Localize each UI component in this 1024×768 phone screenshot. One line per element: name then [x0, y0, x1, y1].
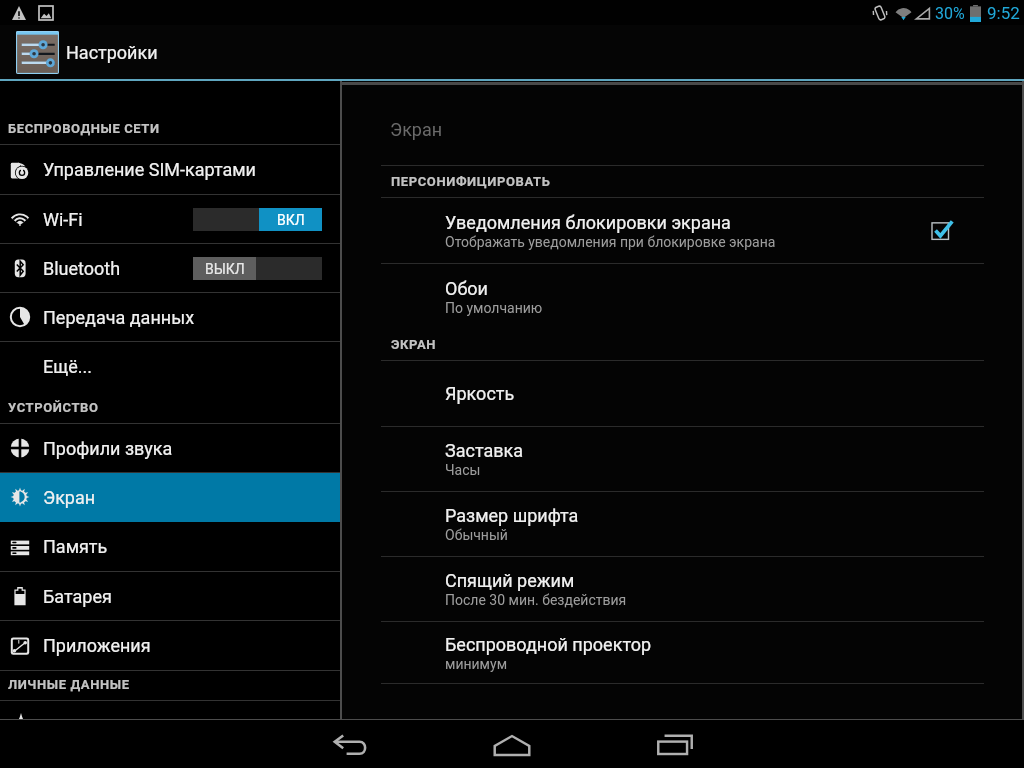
staticText: Профили звука — [43, 438, 173, 459]
staticText: Управление SIM-картами — [43, 159, 256, 180]
button[interactable]: Wi-Fi — [0, 195, 340, 243]
staticText: Экран — [390, 119, 443, 140]
staticText: Ещё... — [43, 356, 93, 377]
button[interactable]: Уведомления блокировки экрана — [342, 198, 1024, 263]
button[interactable]: Back — [318, 721, 382, 768]
staticText: Размер шрифта — [445, 505, 579, 526]
button[interactable]: Управление SIM-картами — [0, 145, 340, 194]
staticText: Wi-Fi — [43, 209, 83, 230]
staticText: БЕСПРОВОДНЫЕ СЕТИ — [8, 121, 160, 136]
button[interactable]: Заставка — [342, 427, 1024, 491]
staticText: ВКЛ — [277, 212, 305, 228]
button[interactable]: Размер шрифта — [342, 492, 1024, 556]
staticText: Настройки — [66, 42, 158, 63]
staticText: Память — [43, 536, 108, 557]
staticText: После 30 мин. бездействия — [445, 592, 627, 608]
button[interactable] — [0, 701, 340, 719]
staticText: Передача данных — [43, 307, 195, 328]
button[interactable]: Экран — [0, 473, 340, 521]
staticText: ВЫКЛ — [205, 261, 245, 277]
button[interactable]: Беспроводной проектор — [342, 622, 1024, 683]
staticText: 9:52 — [987, 3, 1020, 23]
button[interactable]: Lock screen notifications checkbox — [930, 218, 956, 244]
staticText: ПЕРСОНИФИЦИРОВАТЬ — [391, 174, 551, 189]
staticText: Часы — [445, 462, 481, 478]
button[interactable]: ВКЛ — [193, 208, 322, 231]
staticText: Экран — [43, 487, 96, 508]
staticText: Обои — [445, 278, 488, 299]
button[interactable]: ВЫКЛ — [193, 257, 322, 280]
staticText: Беспроводной проектор — [445, 634, 652, 655]
staticText: ЭКРАН — [391, 337, 437, 352]
staticText: минимум — [445, 656, 508, 672]
button[interactable]: Память — [0, 522, 340, 571]
staticText: По умолчанию — [445, 300, 543, 316]
staticText: Отображать уведомления при блокировке эк… — [445, 234, 776, 250]
staticText: Заставка — [445, 440, 524, 461]
button[interactable]: Bluetooth — [0, 244, 340, 292]
staticText: Приложения — [43, 635, 151, 656]
staticText: Уведомления блокировки экрана — [445, 212, 731, 233]
staticText: Спящий режим — [445, 570, 575, 591]
staticText: Обычный — [445, 527, 508, 543]
button[interactable]: Settings — [16, 31, 59, 74]
staticText: Bluetooth — [43, 258, 121, 279]
button[interactable]: Home — [480, 721, 544, 768]
staticText: Яркость — [445, 383, 515, 404]
button[interactable]: Яркость — [342, 361, 1024, 426]
button[interactable]: Спящий режим — [342, 557, 1024, 621]
button[interactable]: Обои — [342, 264, 1024, 329]
button[interactable]: Батарея — [0, 572, 340, 620]
staticText: Батарея — [43, 586, 112, 607]
staticText: УСТРОЙСТВО — [8, 400, 99, 415]
button[interactable]: Ещё... — [0, 342, 340, 391]
staticText: 30% — [935, 4, 965, 23]
button[interactable]: Recent apps — [643, 721, 707, 768]
staticText: ЛИЧНЫЕ ДАННЫЕ — [8, 677, 130, 692]
button[interactable]: Приложения — [0, 621, 340, 670]
button[interactable]: Профили звука — [0, 424, 340, 472]
button[interactable]: Передача данных — [0, 293, 340, 341]
